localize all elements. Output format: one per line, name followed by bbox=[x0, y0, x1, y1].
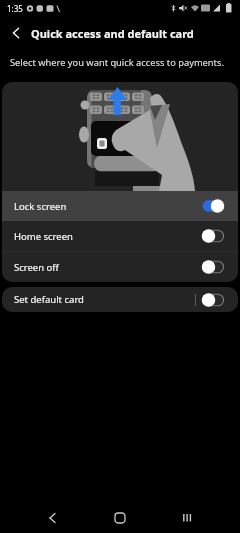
button[interactable] bbox=[46, 512, 58, 524]
staticText: Home screen bbox=[14, 230, 73, 243]
staticText: 1:35 bbox=[7, 3, 23, 14]
button[interactable]: Screen off bbox=[2, 252, 238, 282]
button[interactable]: Home screen bbox=[2, 221, 238, 251]
button[interactable] bbox=[114, 512, 126, 524]
staticText: Select where you want quick access to pa… bbox=[10, 56, 224, 69]
staticText: Set default card bbox=[14, 293, 84, 306]
button[interactable]: Lock screen bbox=[2, 191, 238, 221]
staticText: Lock screen bbox=[14, 200, 67, 213]
button[interactable] bbox=[181, 512, 193, 524]
staticText: Quick access and default card bbox=[31, 26, 194, 41]
staticText: Screen off bbox=[14, 261, 59, 274]
button[interactable]: Set default card bbox=[2, 287, 238, 312]
button[interactable] bbox=[6, 23, 26, 43]
